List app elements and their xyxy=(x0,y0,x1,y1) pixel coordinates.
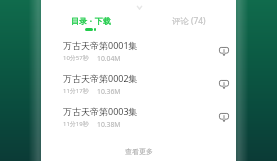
staticText: 万古天帝第0001集 xyxy=(63,39,138,51)
button[interactable]: 万古天帝第0003集 xyxy=(41,100,236,133)
staticText: 11分19秒 xyxy=(63,120,89,128)
button[interactable]: 目录 · 下载 xyxy=(41,15,138,33)
staticText: 10.38M xyxy=(97,120,121,129)
staticText: 10.36M xyxy=(97,87,121,96)
button[interactable]: 万古天帝第0002集 xyxy=(41,67,236,100)
button[interactable]: Download xyxy=(216,109,232,125)
staticText: 万古天帝第0002集 xyxy=(63,72,138,84)
button[interactable]: 查看更多 xyxy=(41,142,236,160)
staticText: 万古天帝第0003集 xyxy=(63,105,138,117)
button[interactable]: Download xyxy=(216,43,232,59)
staticText: 目录 · 下载 xyxy=(71,15,112,26)
button[interactable]: Download xyxy=(216,76,232,92)
staticText: 11分17秒 xyxy=(63,87,89,95)
staticText: 10分57秒 xyxy=(63,54,89,62)
button[interactable]: 评论 (74) xyxy=(138,15,236,33)
button[interactable]: Collapse xyxy=(133,1,146,13)
staticText: 查看更多 xyxy=(125,147,153,156)
staticText: 评论 (74) xyxy=(172,15,206,26)
staticText: 10.04M xyxy=(97,54,121,63)
button[interactable]: 万古天帝第0001集 xyxy=(41,34,236,67)
